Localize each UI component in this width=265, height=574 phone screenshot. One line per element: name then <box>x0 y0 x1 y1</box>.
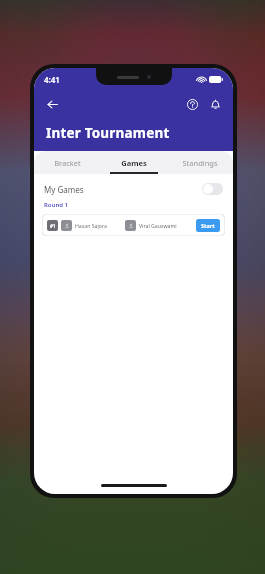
button[interactable]: Help <box>183 95 201 113</box>
button[interactable]: Standings <box>167 151 233 174</box>
button[interactable]: Notifications <box>206 95 224 113</box>
button[interactable]: #1 <box>42 214 225 236</box>
button[interactable]: Bracket <box>34 151 101 174</box>
button[interactable]: Start <box>196 219 220 232</box>
staticText: Viral Gauswami <box>139 222 177 229</box>
staticText: Standings <box>182 158 218 168</box>
staticText: Bracket <box>54 158 81 168</box>
staticText: 4:41 <box>44 74 60 85</box>
staticText: Games <box>121 158 147 168</box>
staticText: #1 <box>50 223 56 229</box>
button[interactable]: My games toggle <box>202 183 223 195</box>
button[interactable]: Back <box>43 95 61 113</box>
staticText: Start <box>201 222 215 229</box>
staticText: My Games <box>44 184 84 195</box>
button[interactable]: Games <box>101 151 167 174</box>
staticText: Inter Tournament <box>46 124 170 142</box>
staticText: Round 1 <box>44 201 68 209</box>
staticText: Hasan Sajora <box>75 222 107 229</box>
